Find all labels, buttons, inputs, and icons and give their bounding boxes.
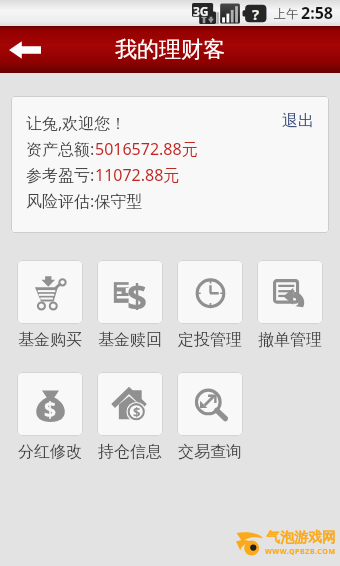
- button[interactable]: Cancel management: [257, 260, 323, 350]
- staticText: 基金购买: [18, 330, 82, 350]
- staticText: 5016572.88元: [95, 138, 198, 160]
- staticText: 2:58: [301, 2, 333, 24]
- staticText: 风险评估:保守型: [26, 190, 143, 212]
- button[interactable]: Fund purchase: [17, 260, 83, 350]
- staticText: 退出: [282, 111, 314, 131]
- button[interactable]: Trade query: [177, 372, 243, 462]
- button[interactable]: Back: [0, 28, 50, 72]
- button[interactable]: Holdings: [97, 372, 163, 462]
- staticText: 资产总额:: [26, 138, 95, 160]
- button[interactable]: Fund redemption: [97, 260, 163, 350]
- staticText: 持仓信息: [98, 442, 162, 462]
- staticText: $: [127, 273, 148, 310]
- staticText: 基金赎回: [98, 330, 162, 350]
- staticText: 定投管理: [178, 330, 242, 350]
- button[interactable]: Dividend change: [17, 372, 83, 462]
- staticText: 分红修改: [18, 442, 82, 462]
- button[interactable]: 退出: [278, 108, 318, 134]
- staticText: $: [133, 403, 141, 421]
- staticText: 撤单管理: [258, 330, 322, 350]
- staticText: 交易查询: [178, 442, 242, 462]
- staticText: 我的理财客: [115, 36, 225, 64]
- staticText: WWW.QPBZB.COM: [265, 547, 336, 557]
- staticText: 气泡游戏网: [266, 529, 336, 547]
- staticText: 参考盈亏:: [26, 164, 95, 186]
- button[interactable]: Plan management: [177, 260, 243, 350]
- staticText: ?: [252, 4, 260, 24]
- staticText: 11072.88元: [95, 164, 180, 186]
- staticText: 上午: [274, 6, 298, 21]
- staticText: 3G: [193, 3, 209, 19]
- staticText: $: [44, 395, 57, 424]
- staticText: 让兔,欢迎您！: [26, 112, 127, 134]
